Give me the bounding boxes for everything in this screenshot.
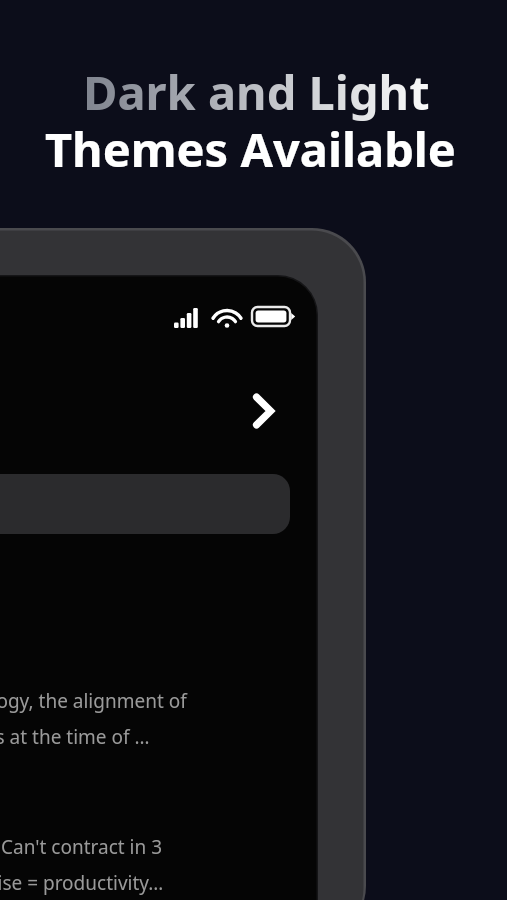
staticText: oise = productivity…	[0, 870, 164, 896]
button[interactable]	[0, 474, 290, 534]
button[interactable]: Next	[236, 382, 290, 440]
staticText: Dark and Light	[83, 60, 430, 124]
staticText: Can't contract in 3	[1, 834, 163, 860]
staticText: Themes Available	[45, 117, 456, 181]
staticText: ology, the alignment of	[0, 688, 187, 714]
staticText: ets at the time of …	[0, 724, 150, 750]
